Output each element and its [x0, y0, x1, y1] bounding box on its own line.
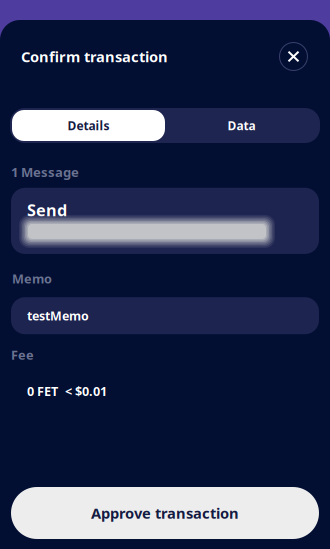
staticText: Send [27, 199, 67, 221]
staticText: Approve transaction [91, 503, 239, 523]
button[interactable]: Close [279, 42, 308, 71]
button[interactable]: Details [12, 110, 165, 141]
staticText: Details [67, 117, 109, 134]
staticText: Data [227, 117, 255, 134]
staticText: Confirm transaction [21, 46, 168, 66]
button[interactable]: Approve transaction [11, 487, 319, 539]
button[interactable]: Data [165, 110, 318, 141]
staticText: Fee [11, 346, 34, 363]
staticText: 1 Message [11, 163, 79, 181]
staticText: 0 FET [27, 382, 58, 400]
staticText: testMemo [27, 307, 89, 324]
staticText: Memo [12, 270, 52, 287]
staticText: < $0.01 [65, 382, 107, 400]
